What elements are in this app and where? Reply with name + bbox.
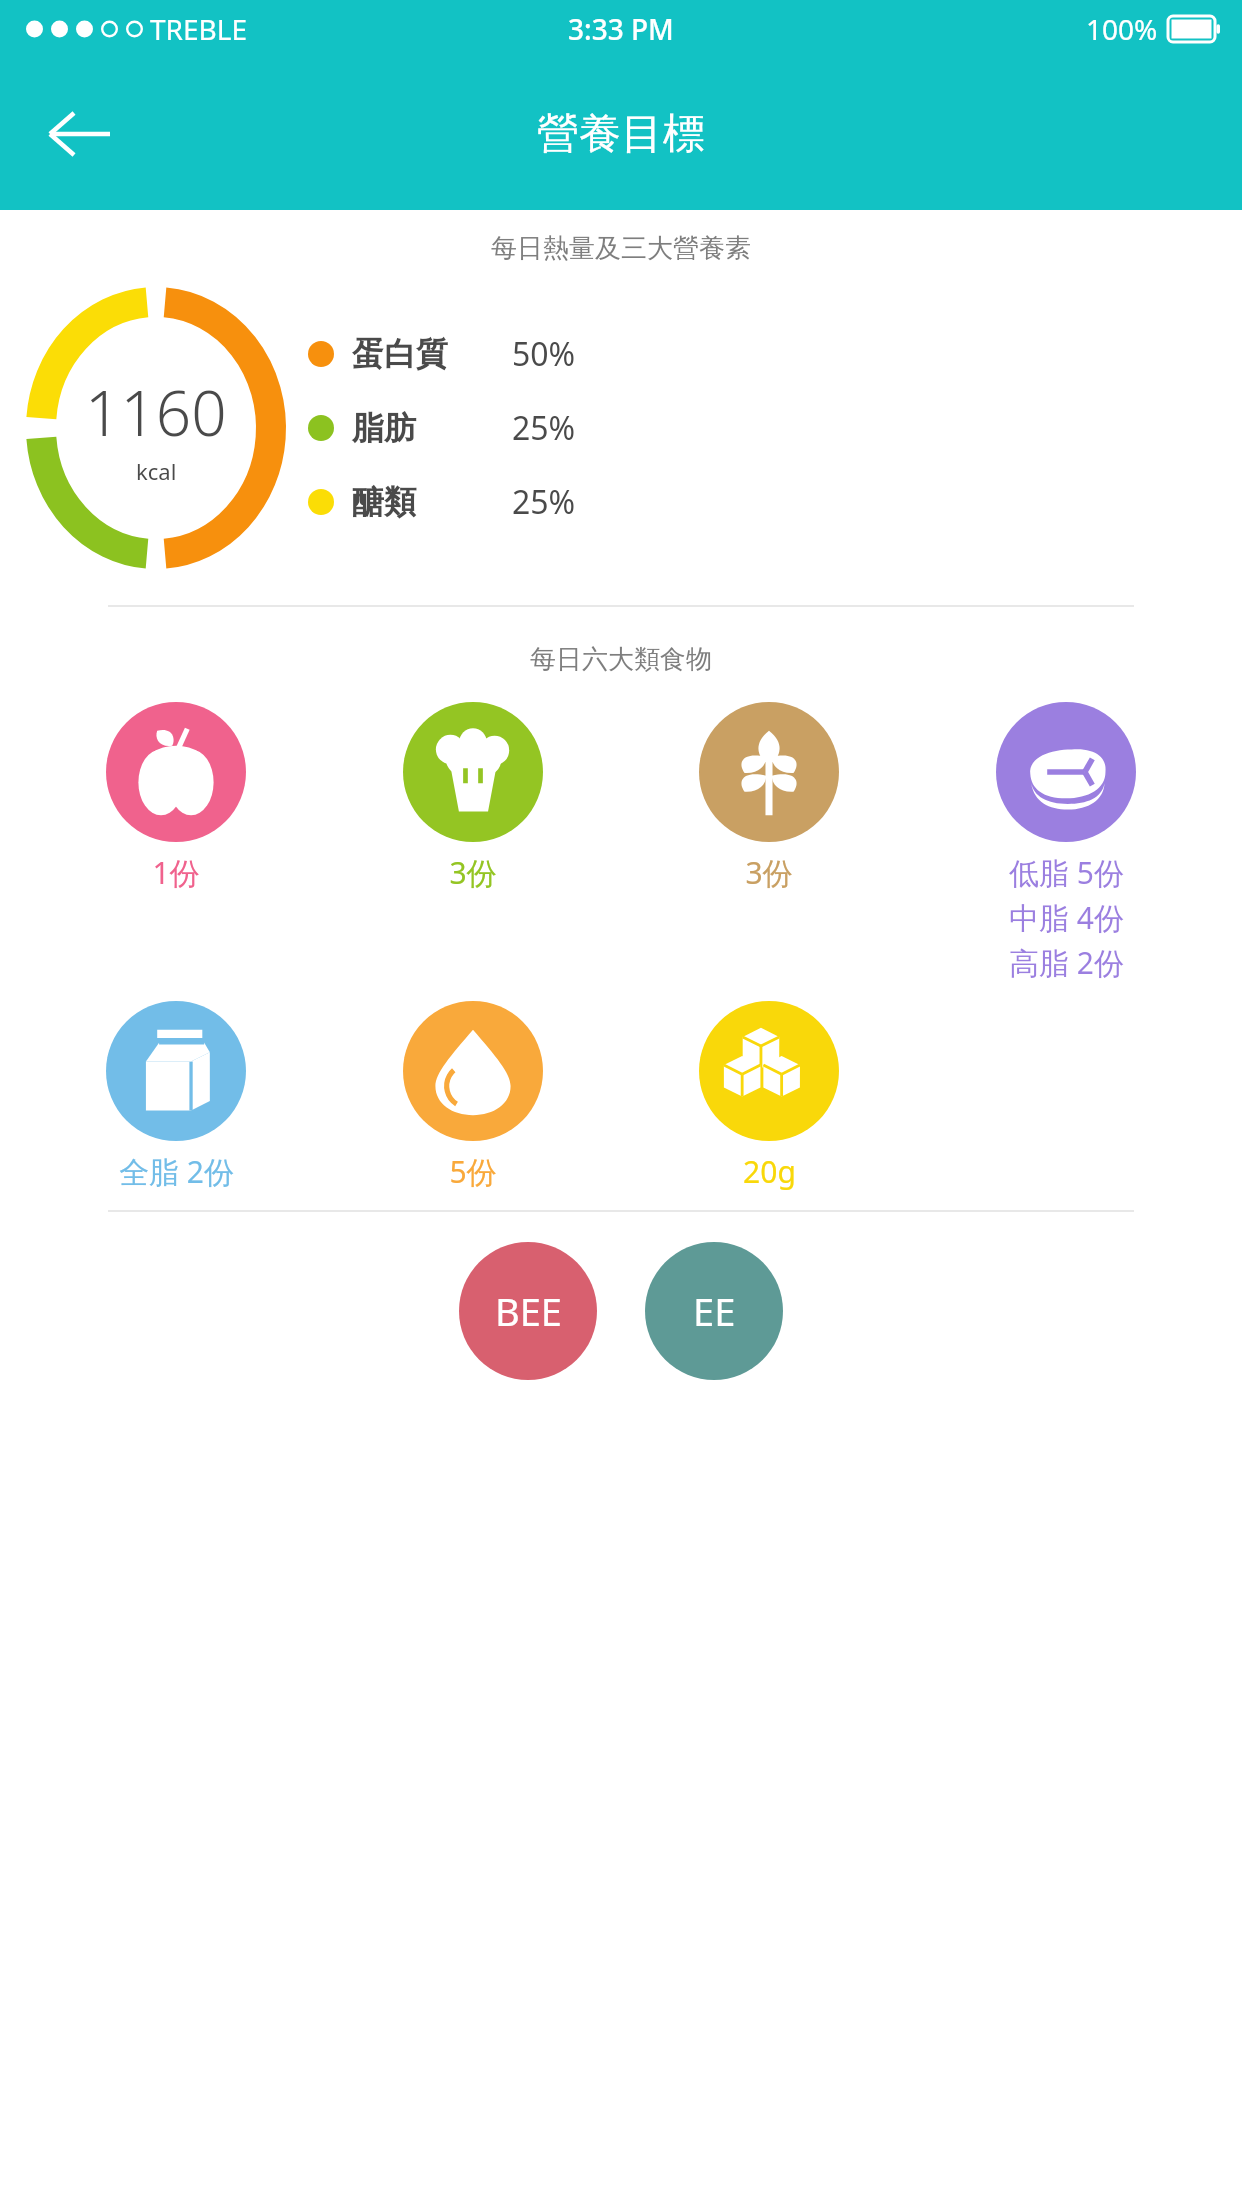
staticText: 低脂 5份 (1009, 852, 1124, 893)
staticText: EE (693, 1285, 736, 1337)
staticText: 營養目標 (537, 108, 705, 161)
staticText: 3份 (449, 852, 497, 893)
staticText: 3份 (745, 852, 793, 893)
button[interactable]: 1份 (78, 702, 274, 897)
button[interactable]: Back (34, 89, 124, 179)
staticText: 5份 (449, 1151, 497, 1192)
button[interactable]: 蛋白質 (308, 332, 1224, 376)
staticText: 蛋白質 (352, 334, 512, 374)
staticText: 每日六大類食物 (0, 643, 1242, 676)
staticText: TREBLE (150, 10, 247, 48)
staticText: 全脂 2份 (119, 1151, 234, 1192)
button[interactable]: BEE (459, 1242, 597, 1380)
staticText: 中脂 4份 (1009, 897, 1124, 938)
staticText: 25% (512, 480, 576, 524)
button[interactable]: 20g (671, 1001, 867, 1196)
staticText: 脂肪 (352, 408, 512, 448)
button[interactable]: 醣類 (308, 480, 1224, 524)
staticText: 1160 (85, 370, 227, 454)
staticText: 每日熱量及三大營養素 (0, 232, 1242, 265)
button[interactable]: EE (645, 1242, 783, 1380)
button[interactable]: 全脂 2份 (78, 1001, 274, 1196)
staticText: BEE (495, 1285, 562, 1337)
button[interactable]: 脂肪 (308, 406, 1224, 450)
button[interactable]: 5份 (375, 1001, 571, 1196)
staticText: 醣類 (352, 482, 512, 522)
staticText: 高脂 2份 (1009, 942, 1124, 983)
button[interactable]: 3份 (375, 702, 571, 897)
staticText: 100% (1086, 10, 1158, 48)
staticText: 25% (512, 406, 576, 450)
staticText: 50% (512, 332, 576, 376)
staticText: kcal (136, 456, 177, 486)
staticText: 20g (743, 1151, 796, 1192)
button[interactable]: 3份 (671, 702, 867, 897)
button[interactable]: 低脂 5份 (968, 702, 1164, 987)
staticText: 1份 (152, 852, 200, 893)
staticText: 3:33 PM (568, 10, 674, 48)
